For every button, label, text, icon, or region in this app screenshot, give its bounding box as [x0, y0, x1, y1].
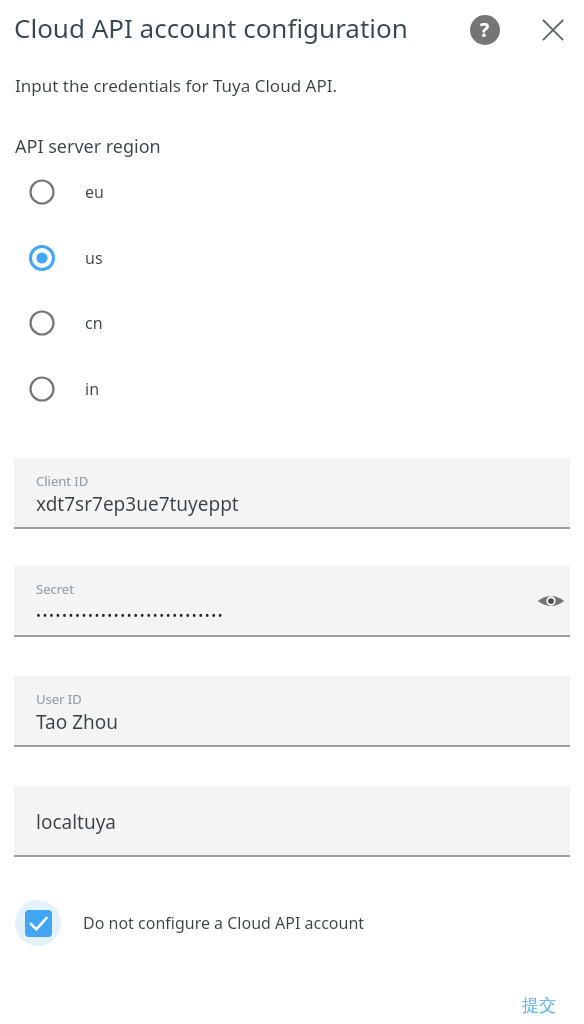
staticText: Cloud API account configuration [14, 10, 408, 45]
button[interactable]: in [20, 367, 220, 411]
staticText: cn [85, 312, 103, 334]
staticText: 提交 [522, 995, 556, 1016]
button[interactable]: Help [467, 12, 503, 48]
button[interactable]: cn [20, 301, 220, 345]
staticText: Do not configure a Cloud API account [83, 912, 365, 934]
staticText: User ID [36, 690, 82, 708]
button[interactable]: User ID [14, 676, 570, 747]
button[interactable]: Secret [14, 566, 570, 637]
staticText: eu [85, 181, 104, 203]
staticText: xdt7sr7ep3ue7tuyeppt [36, 491, 239, 517]
button[interactable]: localtuya [14, 786, 570, 857]
staticText: in [85, 378, 100, 400]
button[interactable]: eu [20, 170, 220, 214]
button[interactable]: 提交 [508, 988, 570, 1022]
staticText: ••••••••••••••••••••••••••••• [36, 606, 225, 624]
button[interactable]: Show password [532, 582, 570, 620]
staticText: Tao Zhou [36, 709, 118, 735]
staticText: Input the credentials for Tuya Cloud API… [15, 74, 337, 97]
staticText: localtuya [36, 809, 117, 835]
staticText: Client ID [36, 472, 89, 490]
staticText: us [85, 247, 103, 269]
staticText: ? [480, 17, 490, 43]
button[interactable]: us [20, 236, 220, 280]
button[interactable]: Client ID [14, 458, 570, 529]
staticText: Secret [36, 580, 74, 598]
button[interactable]: Do not configure a Cloud API account [15, 900, 435, 946]
button[interactable]: Close [535, 12, 571, 48]
staticText: API server region [15, 134, 161, 159]
